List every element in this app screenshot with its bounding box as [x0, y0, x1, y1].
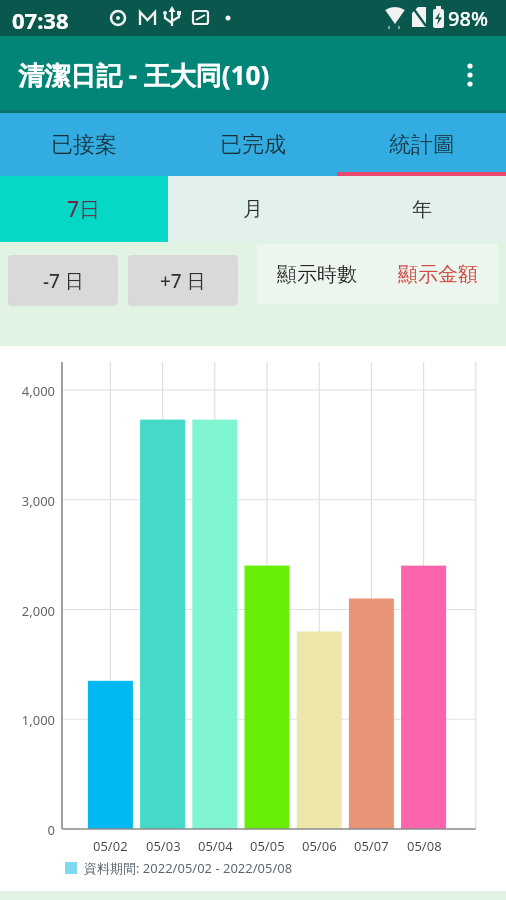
staticText: 05/08 [407, 837, 442, 855]
staticText: 05/05 [250, 837, 285, 855]
button[interactable]: -7 日 [8, 255, 118, 306]
staticText: 07:38 [12, 5, 69, 35]
staticText: 資料期間: 2022/05/02 - 2022/05/08 [84, 859, 293, 877]
staticText: 已完成 [220, 131, 286, 159]
staticText: 0 [47, 821, 55, 839]
button[interactable]: 已接案 [0, 113, 168, 176]
staticText: 已接案 [51, 131, 117, 159]
staticText: 顯示時數 [277, 262, 357, 287]
staticText: 2,000 [21, 602, 55, 620]
staticText: 4,000 [21, 382, 55, 400]
staticText: 統計圖 [389, 131, 455, 159]
staticText: +7 日 [160, 268, 206, 294]
staticText: 98% [448, 5, 488, 32]
button[interactable]: +7 日 [128, 255, 238, 306]
staticText: 年 [412, 197, 432, 222]
button[interactable]: 月 [168, 176, 337, 242]
button[interactable]: 年 [337, 176, 506, 242]
staticText: 顯示金額 [398, 262, 478, 287]
staticText: 05/03 [146, 837, 181, 855]
button[interactable] [450, 55, 490, 95]
staticText: 05/04 [198, 837, 233, 855]
staticText: 7日 [67, 195, 101, 224]
button[interactable]: 顯示時數 [257, 244, 377, 304]
staticText: 05/02 [93, 837, 128, 855]
button[interactable]: 已完成 [168, 113, 337, 176]
button[interactable]: 顯示金額 [377, 244, 498, 304]
staticText: -7 日 [43, 268, 84, 294]
staticText: 1,000 [21, 711, 55, 729]
staticText: 05/07 [354, 837, 389, 855]
button[interactable]: 7日 [0, 176, 168, 242]
button[interactable]: 統計圖 [337, 113, 506, 176]
staticText: 3,000 [21, 492, 55, 510]
staticText: 月 [243, 197, 263, 222]
staticText: 清潔日記 - 王大同(10) [18, 57, 270, 93]
staticText: 05/06 [302, 837, 337, 855]
